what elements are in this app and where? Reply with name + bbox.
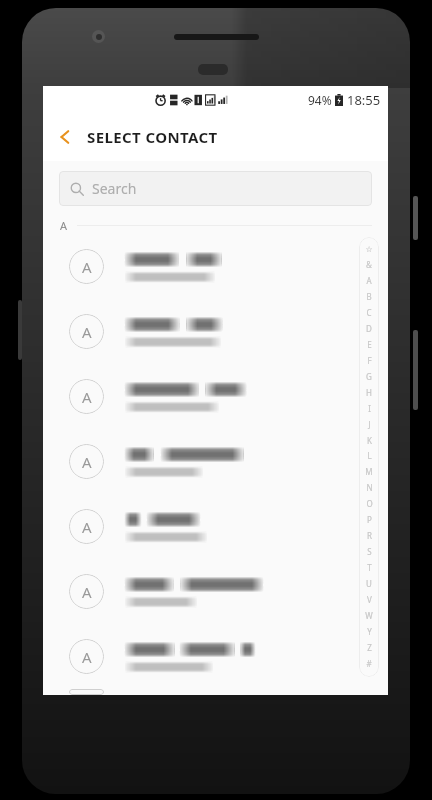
button[interactable]: A [43,429,388,494]
staticText: O [366,498,373,509]
staticText: G [366,371,372,382]
staticText: D [366,323,372,334]
staticText: S [367,546,372,557]
staticText: U [366,578,372,589]
staticText: T [367,562,372,573]
staticText: N [366,482,373,493]
staticText: & [366,259,372,270]
staticText: E [367,339,372,350]
button[interactable]: A [43,234,388,299]
staticText: # [366,658,372,669]
button[interactable]: A [43,559,388,624]
staticText: A [366,275,372,286]
staticText: B [366,291,372,302]
staticText: Z [367,642,372,653]
staticText: W [365,610,373,621]
staticText: A [82,582,92,602]
button[interactable]: A [43,364,388,429]
button[interactable]: Search [59,171,372,206]
staticText: 18:55 [347,91,381,109]
button[interactable]: Back [43,113,87,161]
staticText: H [366,387,372,398]
staticText: A [82,517,92,537]
staticText: A [82,387,92,407]
button[interactable]: A [43,624,388,689]
button[interactable]: Alphabet index [359,237,379,677]
staticText: J [368,419,371,430]
staticText: 94% [308,92,332,108]
staticText: L [367,450,372,461]
staticText: F [367,355,372,366]
button[interactable]: A [43,299,388,364]
staticText: Y [367,626,372,637]
staticText: A [82,322,92,342]
staticText: Search [92,179,137,198]
staticText: V [367,594,372,605]
staticText: ☆ [365,245,373,254]
staticText: P [367,514,372,525]
staticText: K [367,435,372,446]
staticText: I [368,403,371,414]
staticText: C [366,307,372,318]
staticText: M [365,466,373,477]
staticText: A [82,647,92,667]
staticText: R [367,530,372,541]
staticText: SELECT CONTACT [87,127,218,147]
staticText: A [60,218,68,233]
staticText: A [82,257,92,277]
staticText: A [82,452,92,472]
button[interactable] [43,689,388,695]
button[interactable]: A [43,494,388,559]
